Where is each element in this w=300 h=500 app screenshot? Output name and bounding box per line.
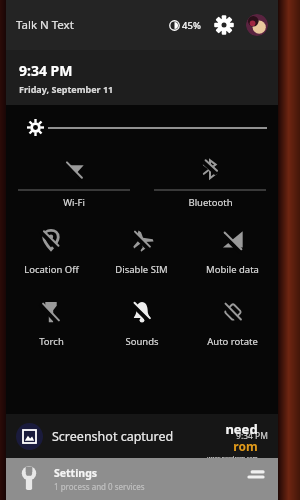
staticText: Mobile data [206, 263, 259, 276]
staticText: Bluetooth [188, 196, 233, 209]
button[interactable]: Settings [213, 14, 235, 36]
staticText: Friday, September 11 [19, 83, 114, 95]
staticText: Screenshot captured [52, 428, 174, 445]
button[interactable]: Mobile data [187, 216, 278, 276]
staticText: rom [233, 438, 258, 454]
staticText: 45% [182, 19, 201, 32]
button[interactable]: Location Off [6, 216, 96, 276]
button[interactable]: Brightness [6, 105, 278, 150]
button[interactable]: User profile [246, 14, 268, 36]
staticText: Disable SIM [115, 263, 168, 276]
staticText: Auto rotate [207, 335, 258, 348]
button[interactable]: Sounds [96, 288, 187, 348]
staticText: 1 process and 0 services [54, 481, 145, 492]
staticText: www.needrom.com [207, 454, 258, 461]
staticText: Location Off [24, 263, 79, 276]
button[interactable]: Settings [6, 458, 278, 500]
staticText: need [225, 420, 258, 438]
staticText: Torch [39, 335, 64, 348]
staticText: 9:34 PM [236, 430, 268, 442]
staticText: Talk N Text [16, 17, 74, 33]
staticText: Sounds [125, 335, 159, 348]
button[interactable]: Screenshot captured [6, 414, 278, 458]
button[interactable]: Auto rotate [187, 288, 278, 348]
button[interactable]: Bluetooth [142, 150, 278, 209]
button[interactable]: Disable SIM [96, 216, 187, 276]
staticText: Wi-Fi [63, 196, 85, 209]
staticText: Settings [54, 466, 98, 480]
staticText: 9:34 PM [19, 61, 73, 80]
button[interactable]: Torch [6, 288, 96, 348]
button[interactable]: Wi-Fi [6, 150, 142, 209]
